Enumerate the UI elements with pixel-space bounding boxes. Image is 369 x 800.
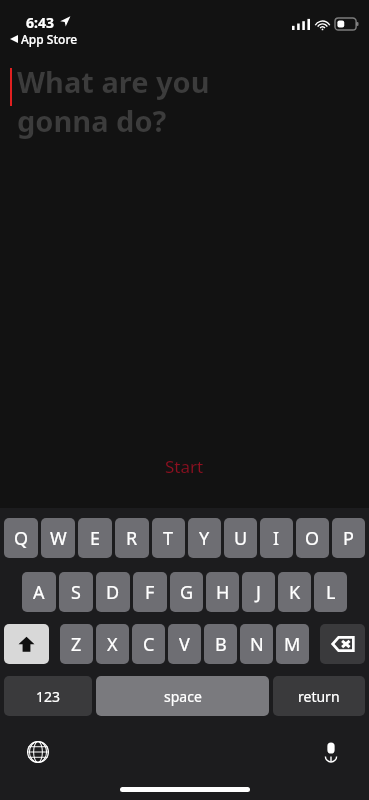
- staticText: gonna do?: [17, 101, 167, 140]
- staticText: W: [50, 526, 67, 551]
- button[interactable]: A: [22, 572, 56, 612]
- button[interactable]: App Store: [8, 31, 80, 47]
- staticText: I: [273, 526, 280, 551]
- button[interactable]: U: [224, 518, 257, 558]
- button[interactable]: Z: [60, 624, 93, 664]
- button[interactable]: Switch keyboard language: [22, 736, 54, 768]
- staticText: T: [163, 526, 174, 551]
- staticText: K: [289, 580, 301, 605]
- button[interactable]: F: [133, 572, 167, 612]
- button[interactable]: I: [260, 518, 293, 558]
- staticText: Y: [199, 526, 210, 551]
- staticText: F: [145, 580, 155, 605]
- staticText: Start: [165, 455, 204, 478]
- button[interactable]: P: [332, 518, 365, 558]
- staticText: C: [143, 632, 155, 657]
- staticText: X: [107, 632, 118, 657]
- button[interactable]: X: [96, 624, 129, 664]
- button[interactable]: What are you: [0, 62, 369, 148]
- staticText: R: [126, 526, 138, 551]
- button[interactable]: space: [96, 676, 269, 716]
- button[interactable]: R: [115, 518, 149, 558]
- staticText: V: [179, 632, 190, 657]
- button[interactable]: Dictation: [315, 736, 347, 768]
- button[interactable]: H: [206, 572, 239, 612]
- button[interactable]: G: [170, 572, 203, 612]
- staticText: L: [326, 580, 336, 605]
- button[interactable]: V: [168, 624, 201, 664]
- staticText: P: [343, 526, 354, 551]
- button[interactable]: Backspace: [320, 624, 365, 664]
- staticText: N: [250, 632, 264, 657]
- button[interactable]: W: [41, 518, 75, 558]
- staticText: A: [33, 580, 45, 605]
- staticText: App Store: [21, 31, 78, 47]
- staticText: D: [106, 580, 120, 605]
- staticText: space: [164, 687, 202, 706]
- button[interactable]: C: [132, 624, 165, 664]
- button[interactable]: T: [152, 518, 185, 558]
- staticText: B: [215, 632, 227, 657]
- staticText: return: [298, 687, 340, 706]
- button[interactable]: Y: [188, 518, 221, 558]
- staticText: J: [256, 580, 261, 605]
- button[interactable]: Start: [147, 449, 222, 484]
- staticText: 123: [36, 687, 61, 706]
- button[interactable]: K: [278, 572, 311, 612]
- staticText: E: [90, 526, 101, 551]
- button[interactable]: L: [314, 572, 347, 612]
- button[interactable]: E: [78, 518, 112, 558]
- button[interactable]: Q: [4, 518, 38, 558]
- staticText: 6:43: [26, 13, 54, 32]
- button[interactable]: O: [296, 518, 329, 558]
- staticText: Z: [71, 632, 82, 657]
- button[interactable]: N: [240, 624, 273, 664]
- button[interactable]: B: [204, 624, 237, 664]
- staticText: What are you: [17, 62, 210, 101]
- button[interactable]: return: [273, 676, 365, 716]
- button[interactable]: 123: [4, 676, 92, 716]
- button[interactable]: Shift: [4, 624, 49, 664]
- staticText: S: [71, 580, 81, 605]
- staticText: O: [305, 526, 320, 551]
- button[interactable]: S: [59, 572, 93, 612]
- button[interactable]: M: [276, 624, 309, 664]
- staticText: G: [180, 580, 194, 605]
- button[interactable]: D: [96, 572, 130, 612]
- staticText: M: [284, 632, 301, 657]
- staticText: H: [216, 580, 230, 605]
- staticText: Q: [14, 526, 29, 551]
- button[interactable]: J: [242, 572, 275, 612]
- staticText: U: [234, 526, 248, 551]
